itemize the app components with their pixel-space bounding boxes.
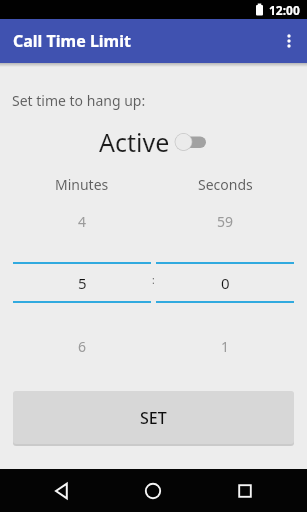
button[interactable]	[223, 469, 267, 512]
staticText: SET	[140, 407, 167, 429]
staticText: 6	[78, 337, 87, 356]
staticText: 59	[217, 212, 234, 231]
button[interactable]: 5	[13, 273, 151, 293]
staticText: :	[152, 273, 155, 287]
staticText: 1	[221, 337, 230, 356]
staticText: 0	[221, 273, 230, 293]
staticText: Minutes	[55, 175, 109, 194]
button[interactable]: Active	[0, 125, 307, 159]
staticText: 12:00	[269, 2, 300, 18]
button[interactable]: SET	[13, 391, 294, 444]
button[interactable]: 0	[156, 273, 294, 293]
staticText: Set time to hang up:	[12, 91, 146, 110]
staticText: Seconds	[198, 175, 253, 194]
staticText: Active	[99, 125, 170, 159]
staticText: 4	[78, 212, 87, 231]
button[interactable]	[271, 19, 307, 63]
staticText: 5	[78, 273, 87, 293]
button[interactable]	[40, 469, 84, 512]
button[interactable]	[131, 469, 175, 512]
staticText: Call Time Limit	[13, 30, 131, 52]
